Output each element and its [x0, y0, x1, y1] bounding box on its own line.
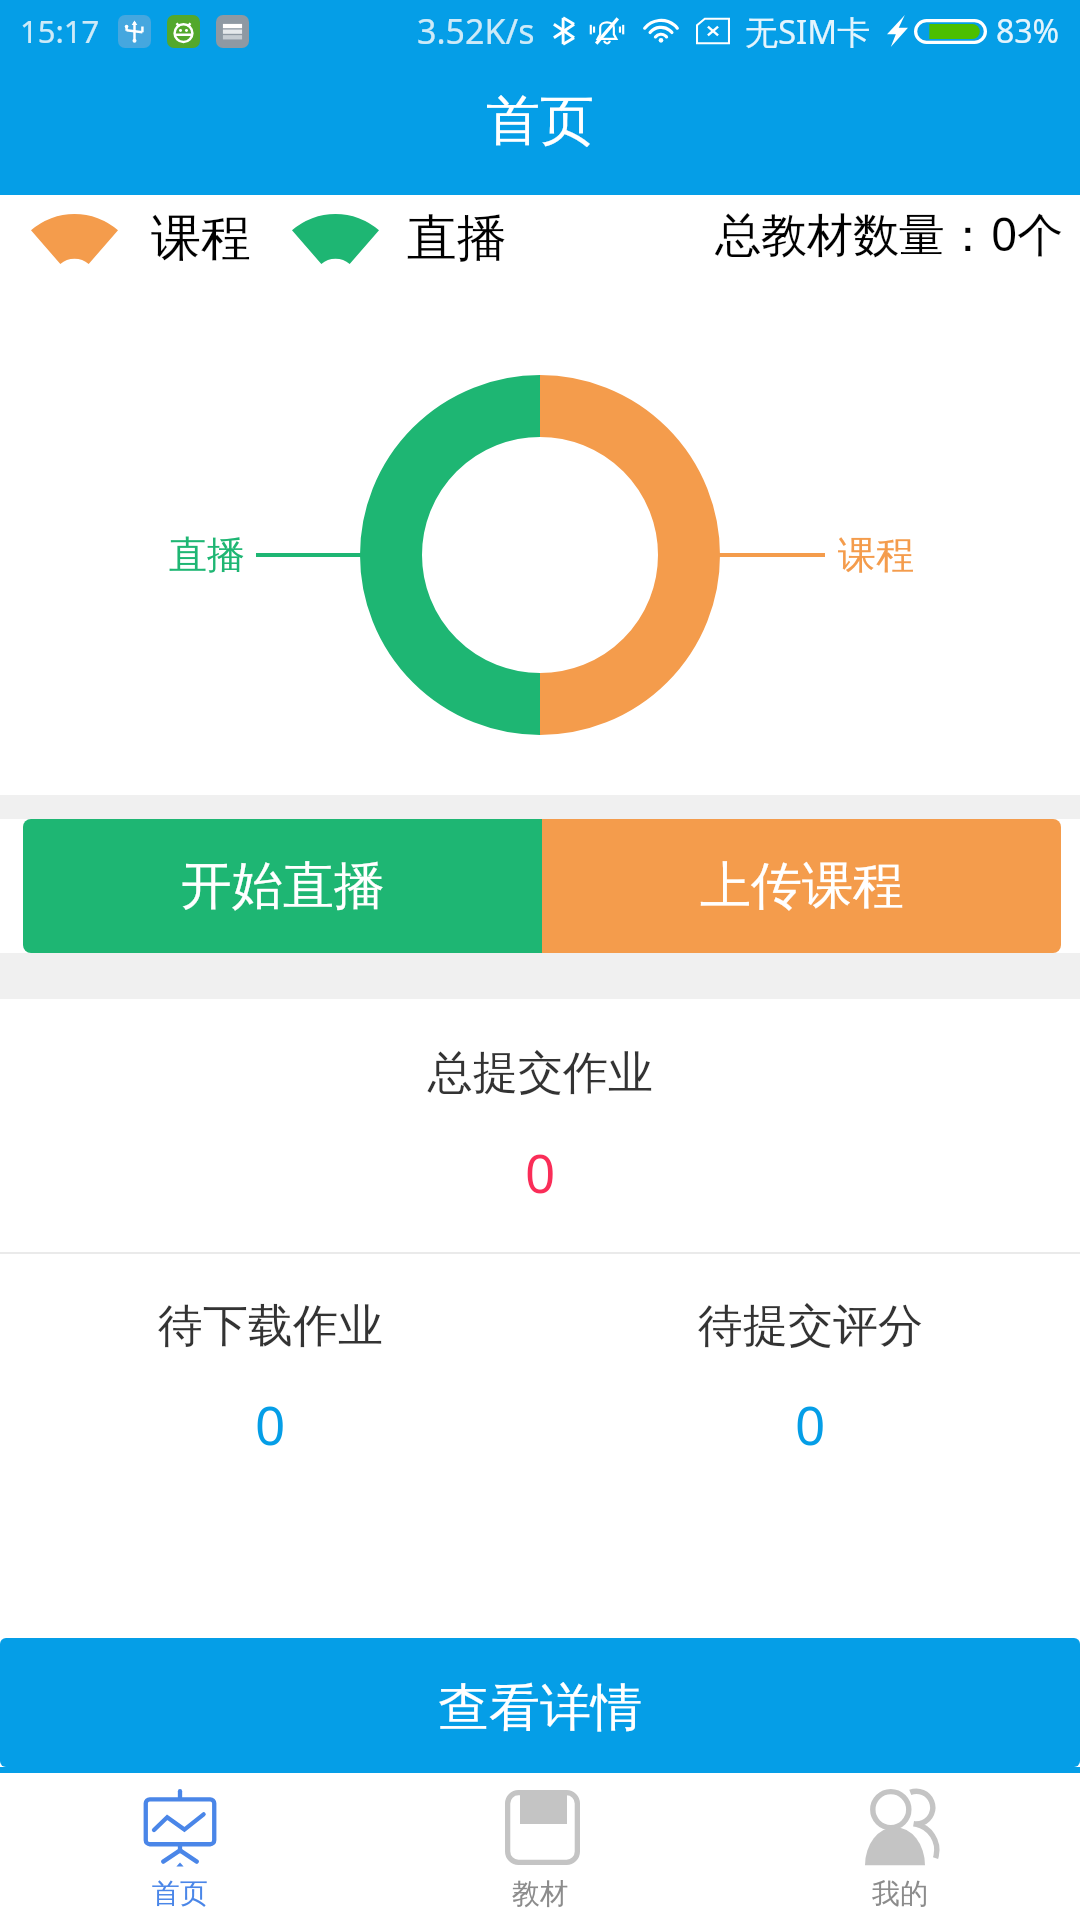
staticText: 首页 [486, 87, 594, 155]
staticText: 0 [525, 1136, 556, 1208]
button[interactable]: 待提交评分 [540, 1254, 1080, 1506]
other: No network [696, 18, 730, 44]
staticText: 直播 [169, 531, 245, 579]
other: Bluetooth [553, 17, 575, 45]
other: Silent [589, 17, 625, 45]
button[interactable]: 总提交作业 [0, 999, 1080, 1252]
staticText: 待下载作业 [158, 1298, 383, 1355]
other: Materials [500, 1790, 580, 1870]
staticText: 直播 [407, 207, 507, 270]
staticText: 开始直播 [181, 854, 385, 918]
staticText: 3.52K/s [417, 8, 535, 54]
staticText: 15:17 [20, 10, 100, 52]
staticText: 总教材数量：0个 [715, 202, 1064, 265]
staticText: 我的 [872, 1876, 928, 1911]
staticText: 查看详情 [438, 1676, 642, 1740]
staticText: 0 [255, 1388, 286, 1460]
staticText: 0 [795, 1388, 826, 1460]
button[interactable]: Home [0, 1773, 360, 1920]
staticText: 上传课程 [700, 854, 904, 918]
button[interactable]: 开始直播 [23, 819, 542, 953]
button[interactable]: Profile [720, 1773, 1080, 1920]
staticText: 无SIM卡 [745, 9, 871, 54]
other: Wi-Fi [640, 18, 682, 44]
staticText: 教材 [512, 1876, 568, 1911]
staticText: 课程 [838, 531, 914, 579]
button[interactable]: 查看详情 [0, 1638, 1080, 1767]
button[interactable]: 待下载作业 [0, 1254, 540, 1506]
staticText: 待提交评分 [698, 1298, 923, 1355]
staticText: 课程 [151, 207, 251, 270]
button[interactable]: 上传课程 [542, 819, 1061, 953]
staticText: 总提交作业 [428, 1045, 653, 1102]
staticText: 83% [996, 9, 1060, 53]
button[interactable]: Materials [360, 1773, 720, 1920]
staticText: 首页 [152, 1876, 208, 1911]
other: Home [140, 1790, 220, 1870]
other: Profile [860, 1790, 940, 1870]
